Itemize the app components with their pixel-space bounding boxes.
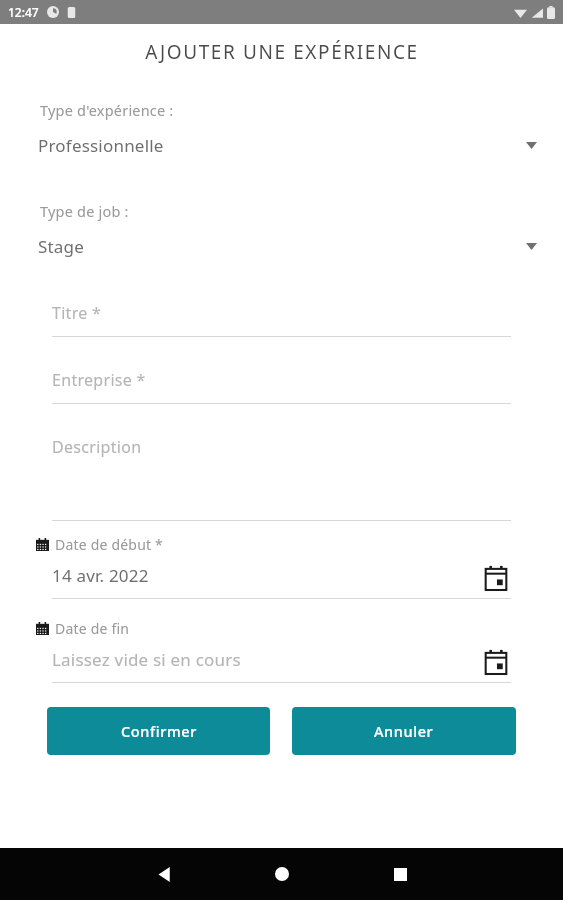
staticText: Date de fin — [55, 619, 130, 638]
staticText: Annuler — [374, 721, 434, 741]
button[interactable]: Retour — [138, 848, 190, 900]
staticText: Entreprise * — [52, 369, 146, 391]
staticText: Date de début * — [55, 535, 163, 554]
button[interactable]: Description — [52, 426, 511, 521]
button[interactable]: Choisir une date — [481, 563, 511, 593]
staticText: 12:47 — [8, 4, 39, 20]
button[interactable]: Professionnelle — [0, 132, 563, 159]
staticText: Description — [52, 436, 142, 458]
button[interactable]: Stage — [0, 233, 563, 260]
staticText: Stage — [38, 235, 85, 258]
staticText: Titre * — [52, 302, 102, 324]
button[interactable]: Annuler — [292, 707, 516, 755]
staticText: Type d'expérience : — [40, 100, 174, 120]
staticText: AJOUTER UNE EXPÉRIENCE — [145, 39, 419, 65]
button[interactable]: Entreprise * — [52, 359, 511, 404]
staticText: Laissez vide si en cours — [52, 648, 241, 671]
button[interactable]: Date de fin — [0, 619, 563, 683]
button[interactable]: Titre * — [52, 292, 511, 337]
staticText: Type de job : — [40, 201, 129, 221]
button[interactable]: Choisir une date — [481, 647, 511, 677]
button[interactable]: Accueil — [256, 848, 308, 900]
button[interactable]: Date de début * — [0, 535, 563, 599]
staticText: Confirmer — [121, 721, 197, 741]
staticText: 14 avr. 2022 — [52, 564, 149, 587]
button[interactable]: Confirmer — [47, 707, 270, 755]
staticText: Professionnelle — [38, 134, 164, 157]
button[interactable]: Applications récentes — [374, 848, 426, 900]
